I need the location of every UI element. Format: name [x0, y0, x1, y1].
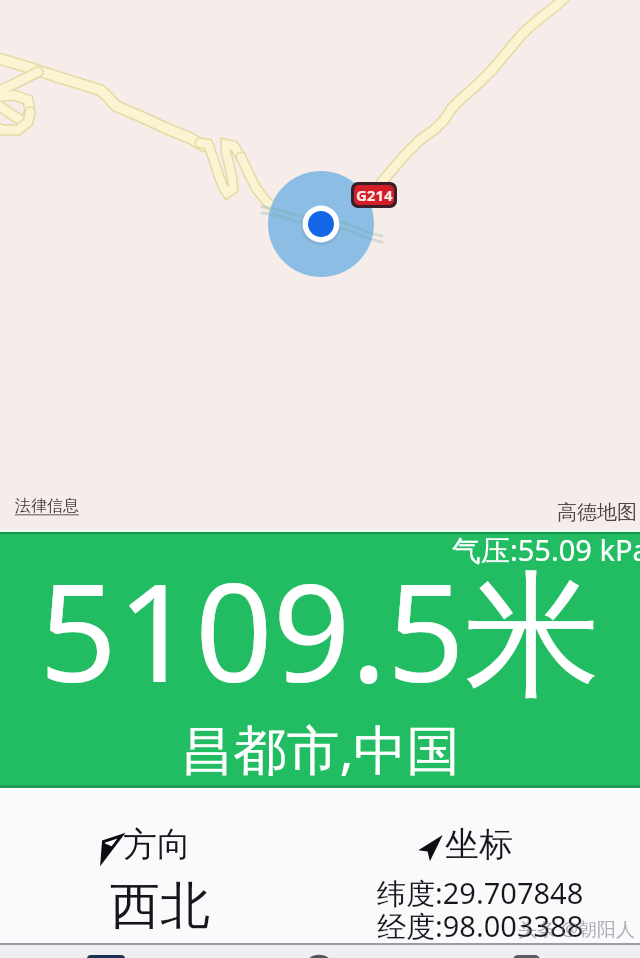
- button[interactable]: 法律信息: [15, 496, 79, 516]
- staticText: 昌都市,中国: [0, 712, 640, 784]
- staticText: 坐标: [445, 823, 513, 866]
- staticText: 经度:98.003388: [377, 906, 584, 946]
- button[interactable]: 坐标: [320, 821, 640, 944]
- staticText: 高德地图: [557, 500, 637, 525]
- button[interactable]: Back: [87, 955, 125, 958]
- staticText: 纬度:29.707848: [377, 873, 584, 913]
- staticText: 头条 @朝阳人: [518, 916, 636, 942]
- button[interactable]: Recents: [513, 955, 540, 958]
- button[interactable]: 方向: [0, 821, 320, 927]
- staticText: 西北: [110, 875, 210, 938]
- staticText: G214: [356, 185, 393, 205]
- staticText: 方向: [123, 823, 191, 866]
- staticText: 气压:55.09 kPa: [452, 530, 640, 570]
- staticText: 5109.5米: [0, 537, 640, 723]
- button[interactable]: Home: [305, 955, 333, 958]
